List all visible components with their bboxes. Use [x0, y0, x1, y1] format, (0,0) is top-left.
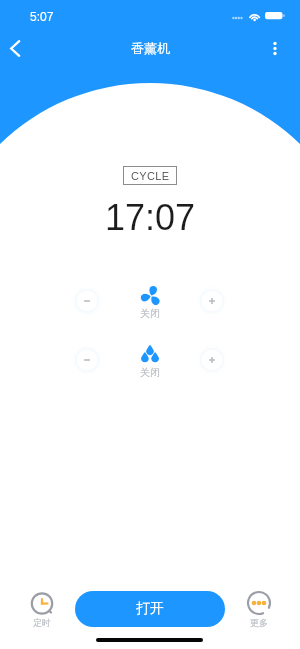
button[interactable]: Back [0, 26, 30, 70]
staticText: CYCLE [131, 170, 170, 182]
staticText: 5:07 [30, 10, 54, 23]
staticText: 17:07 [105, 197, 196, 237]
button[interactable]: 更多 [235, 591, 283, 628]
button[interactable]: More options [258, 26, 292, 70]
button[interactable]: 打开 [75, 591, 225, 627]
staticText: 更多 [250, 617, 268, 628]
button[interactable]: Increase [197, 286, 227, 316]
button[interactable]: Decrease [72, 286, 102, 316]
staticText: 关闭 [140, 307, 160, 319]
staticText: 定时 [33, 617, 51, 628]
staticText: 香薰机 [131, 40, 170, 56]
button[interactable]: 定时 [18, 591, 66, 628]
button[interactable]: Increase [197, 345, 227, 375]
staticText: 关闭 [140, 366, 160, 378]
staticText: 打开 [136, 600, 164, 618]
button[interactable]: Decrease [72, 345, 102, 375]
